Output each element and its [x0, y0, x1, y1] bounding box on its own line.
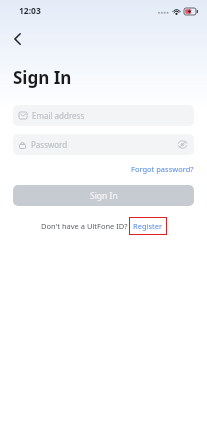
- staticText: Email address: [32, 110, 85, 121]
- staticText: Don't have a UltFone ID?: [41, 221, 128, 231]
- button[interactable]: Forgot password?: [131, 162, 207, 176]
- button[interactable]: Show password: [176, 138, 189, 151]
- button[interactable]: Sign In: [13, 185, 194, 206]
- staticText: Sign In: [90, 190, 118, 202]
- button[interactable]: Email address: [13, 105, 194, 126]
- button[interactable]: Register: [129, 217, 167, 235]
- staticText: Password: [31, 139, 176, 150]
- staticText: Register: [133, 221, 163, 231]
- staticText: 12:03: [19, 5, 41, 17]
- button[interactable]: Back: [0, 22, 34, 56]
- staticText: Sign In: [13, 66, 72, 89]
- button[interactable]: Password: [13, 134, 194, 155]
